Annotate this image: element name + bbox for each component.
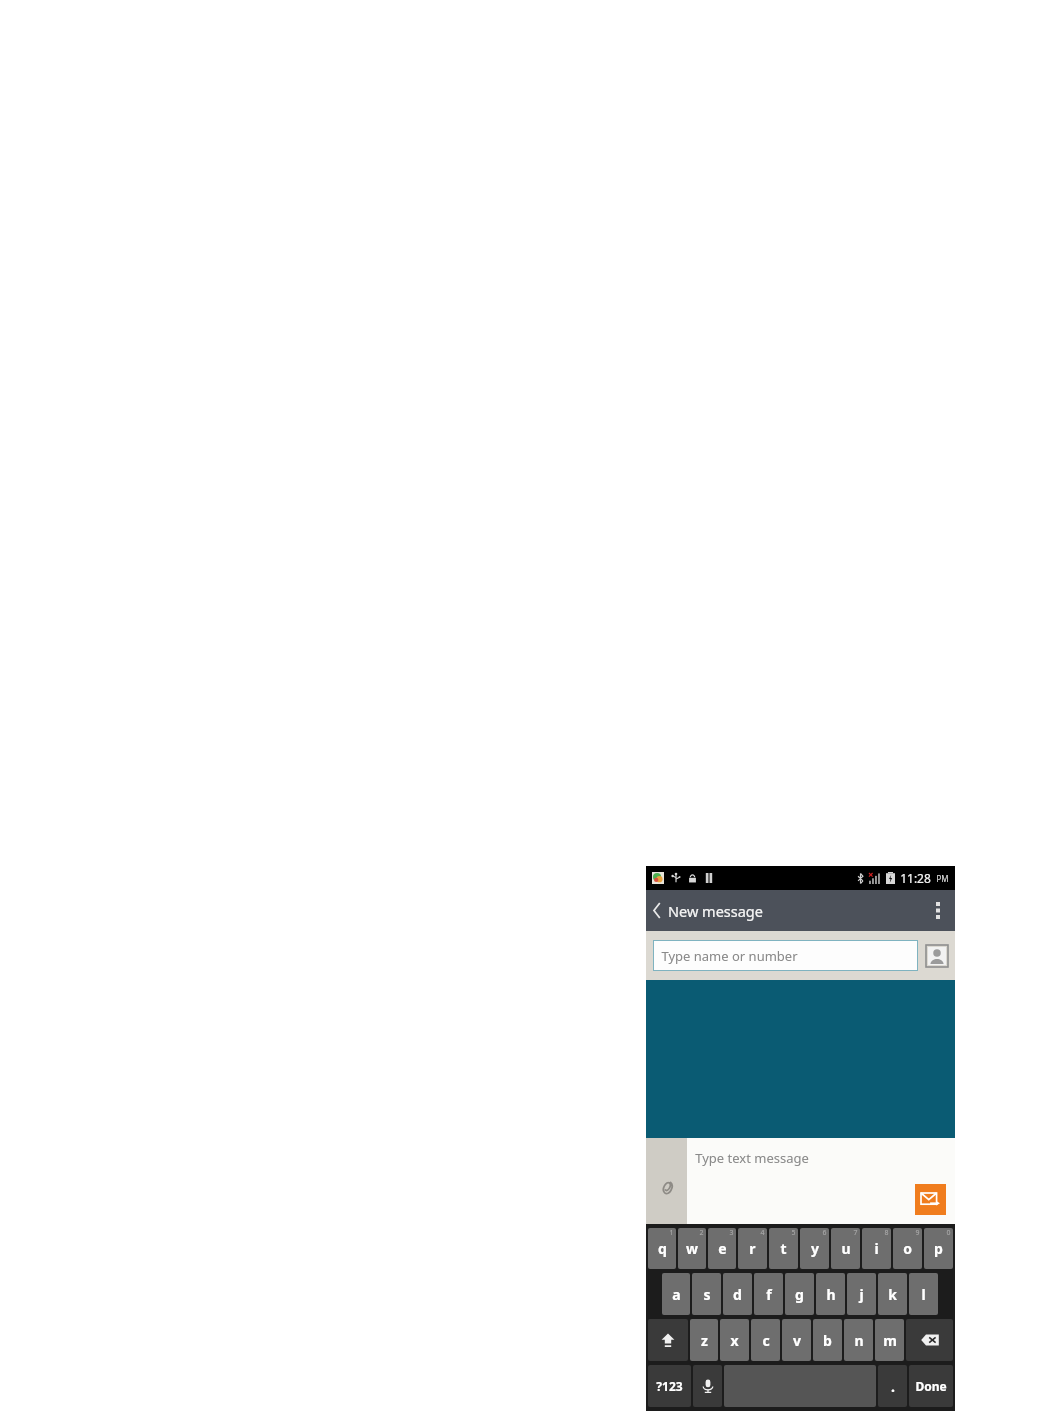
staticText: Done: [915, 1378, 947, 1394]
staticText: w: [686, 1239, 698, 1258]
staticText: 2: [699, 1228, 704, 1238]
button[interactable]: ?123: [648, 1365, 691, 1407]
button[interactable]: m: [875, 1319, 904, 1361]
button[interactable]: o: [893, 1228, 922, 1269]
staticText: l: [921, 1285, 926, 1304]
staticText: g: [795, 1285, 804, 1304]
staticText: New message: [668, 901, 763, 921]
staticText: q: [658, 1239, 667, 1258]
button[interactable]: .: [878, 1365, 907, 1407]
staticText: i: [874, 1239, 879, 1258]
staticText: 0: [946, 1228, 951, 1238]
button[interactable]: n: [844, 1319, 873, 1361]
staticText: 4: [760, 1228, 765, 1238]
staticText: u: [841, 1239, 851, 1258]
button[interactable]: c: [751, 1319, 780, 1361]
staticText: .: [891, 1377, 895, 1396]
staticText: Type name or number: [661, 947, 798, 965]
staticText: x: [730, 1331, 739, 1350]
staticText: 5: [791, 1228, 796, 1238]
staticText: t: [780, 1239, 787, 1258]
button[interactable]: j: [847, 1273, 876, 1315]
staticText: n: [854, 1331, 864, 1350]
staticText: d: [733, 1285, 742, 1304]
staticText: ?123: [656, 1378, 683, 1394]
button[interactable]: i: [862, 1228, 891, 1269]
staticText: 6: [822, 1228, 827, 1238]
staticText: y: [811, 1239, 819, 1258]
button[interactable]: Type name or number: [653, 940, 918, 971]
button[interactable]: k: [878, 1273, 907, 1315]
button[interactable]: Key: [648, 1319, 688, 1361]
button[interactable]: q: [648, 1228, 676, 1269]
staticText: e: [718, 1239, 727, 1258]
staticText: Type text message: [695, 1149, 809, 1167]
staticText: 8: [884, 1228, 889, 1238]
button[interactable]: u: [831, 1228, 860, 1269]
staticText: o: [903, 1239, 912, 1258]
button[interactable]: f: [754, 1273, 783, 1315]
button[interactable]: t: [769, 1228, 798, 1269]
button[interactable]: e: [708, 1228, 736, 1269]
staticText: s: [703, 1285, 711, 1304]
button[interactable]: Key: [906, 1319, 953, 1361]
staticText: c: [762, 1331, 770, 1350]
staticText: p: [934, 1239, 943, 1258]
staticText: h: [826, 1285, 836, 1304]
staticText: z: [701, 1331, 708, 1350]
staticText: k: [888, 1285, 897, 1304]
button[interactable]: y: [800, 1228, 829, 1269]
button[interactable]: p: [924, 1228, 953, 1269]
staticText: m: [883, 1331, 897, 1350]
staticText: j: [859, 1285, 864, 1304]
staticText: v: [793, 1331, 801, 1350]
button[interactable]: d: [723, 1273, 752, 1315]
other: Back: [653, 903, 661, 918]
button[interactable]: Back: [646, 890, 773, 931]
staticText: a: [672, 1285, 681, 1304]
button[interactable]: l: [909, 1273, 938, 1315]
button[interactable]: a: [662, 1273, 690, 1315]
button[interactable]: Send: [915, 1184, 946, 1215]
staticText: f: [766, 1285, 772, 1304]
button[interactable]: Pick contact: [926, 945, 948, 967]
staticText: r: [749, 1239, 756, 1258]
staticText: 1: [669, 1228, 674, 1238]
staticText: 11:28: [900, 870, 931, 886]
staticText: 9: [915, 1228, 920, 1238]
button[interactable]: w: [678, 1228, 706, 1269]
button[interactable]: g: [785, 1273, 814, 1315]
staticText: 7: [853, 1228, 858, 1238]
staticText: b: [823, 1331, 832, 1350]
button[interactable]: Attach: [646, 1138, 687, 1224]
button[interactable]: x: [720, 1319, 749, 1361]
button[interactable]: v: [782, 1319, 811, 1361]
button[interactable]: Done: [909, 1365, 953, 1407]
button[interactable]: Key: [693, 1365, 722, 1407]
staticText: PM: [936, 873, 949, 884]
button[interactable]: s: [692, 1273, 721, 1315]
button[interactable]: More options: [921, 890, 955, 931]
button[interactable]: b: [813, 1319, 842, 1361]
button[interactable]: z: [690, 1319, 718, 1361]
staticText: 3: [729, 1228, 734, 1238]
button[interactable]: h: [816, 1273, 845, 1315]
button[interactable]: r: [738, 1228, 767, 1269]
